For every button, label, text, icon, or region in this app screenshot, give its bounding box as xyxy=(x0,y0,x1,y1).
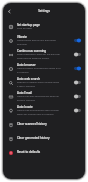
button[interactable]: Set startup page xyxy=(3,19,85,33)
staticText: Set startup page xyxy=(17,23,40,27)
staticText: Clear generated history xyxy=(17,136,50,140)
button[interactable]: Auto Email xyxy=(3,89,85,103)
staticText: Opens map automatically with location wh… xyxy=(17,109,60,115)
staticText: Opens mail app automatically when an ema… xyxy=(17,95,59,101)
button[interactable]: Vibrate xyxy=(3,33,85,47)
staticText: Vibrate when detects any data while scan… xyxy=(17,39,56,45)
staticText: Auto Email xyxy=(17,91,32,95)
button[interactable]: Clear generated history xyxy=(3,131,85,145)
staticText: Auto web search xyxy=(17,77,40,81)
staticText: Clear scanned history xyxy=(17,122,47,126)
staticText: Settings xyxy=(38,9,50,13)
button[interactable]: Disabled xyxy=(74,94,81,99)
staticText: Scan for page xyxy=(17,27,32,30)
button[interactable]: Auto web search xyxy=(3,75,85,89)
staticText: Result page won't open for the barcode. … xyxy=(17,53,61,59)
staticText: Auto locate xyxy=(17,105,33,109)
button[interactable]: Clear scanned history xyxy=(3,117,85,131)
button[interactable]: Reset to defaults xyxy=(3,145,85,159)
staticText: Opens browser automatically when a url i… xyxy=(17,67,61,73)
button[interactable]: Back xyxy=(5,7,14,16)
button[interactable]: Enabled xyxy=(74,66,81,71)
button[interactable]: Disabled xyxy=(74,80,81,85)
staticText: Continuous scanning xyxy=(17,49,47,53)
button[interactable]: Auto locate xyxy=(3,103,85,117)
staticText: Redirect to default search engine when a… xyxy=(17,81,60,87)
button[interactable]: Continuous scanning xyxy=(3,47,85,61)
button[interactable]: Auto browser xyxy=(3,61,85,75)
staticText: Auto browser xyxy=(17,63,36,67)
button[interactable]: Enabled xyxy=(74,38,81,43)
button[interactable]: Disabled xyxy=(74,108,81,113)
button[interactable]: Disabled xyxy=(74,52,81,57)
staticText: Reset to defaults xyxy=(17,150,41,154)
staticText: Vibrate xyxy=(17,35,27,39)
